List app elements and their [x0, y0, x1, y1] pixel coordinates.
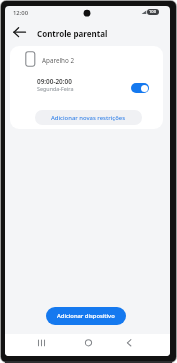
button[interactable]: [9, 24, 33, 40]
staticText: Adicionar novas restrições: [51, 114, 126, 122]
staticText: 100: [149, 9, 157, 15]
staticText: 12:00: [13, 9, 29, 17]
button[interactable]: [33, 335, 59, 353]
staticText: Segunda-Feira: [37, 85, 74, 92]
staticText: Controle parental: [37, 28, 108, 39]
button[interactable]: [118, 335, 144, 353]
staticText: Adicionar dispositivo: [57, 312, 115, 320]
staticText: 09:00-20:00: [37, 77, 72, 86]
button[interactable]: [10, 52, 162, 79]
button[interactable]: [76, 335, 102, 353]
staticText: Aparelho 2: [42, 56, 75, 65]
button[interactable]: Adicionar novas restrições: [35, 110, 142, 125]
button[interactable]: Adicionar dispositivo: [46, 307, 126, 325]
button[interactable]: [131, 83, 149, 93]
